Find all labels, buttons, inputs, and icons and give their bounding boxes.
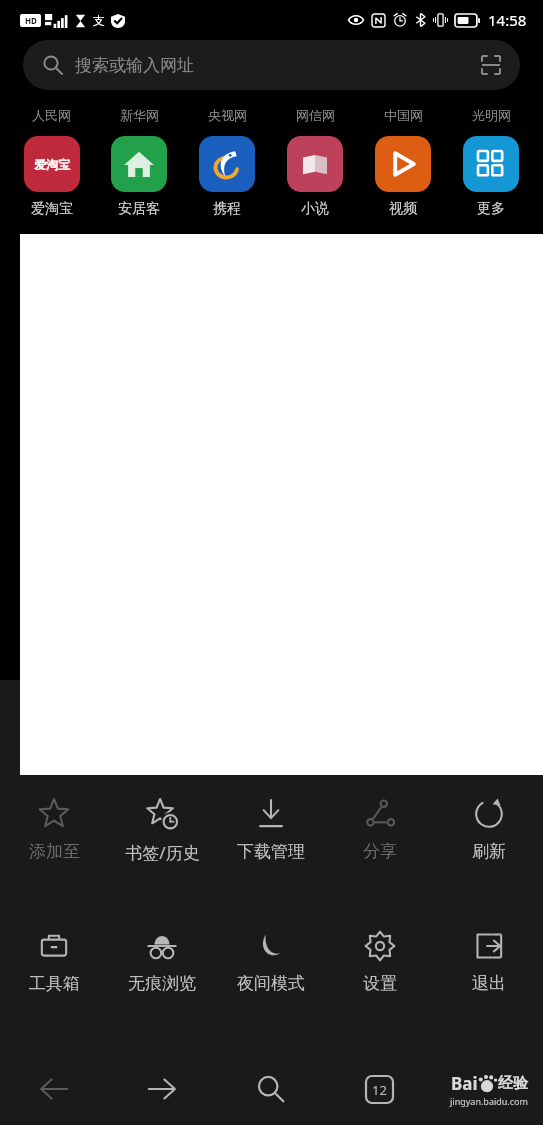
staticText: 搜索或输入网址 [75, 55, 194, 76]
button[interactable]: 安居客 [95, 136, 183, 218]
button[interactable]: 标签页 12 [325, 1053, 434, 1125]
staticText: 光明网 [472, 107, 511, 123]
button[interactable]: 添加至 [3, 791, 105, 913]
button[interactable]: 分享 [328, 791, 431, 913]
button[interactable]: 刷新 [437, 791, 540, 913]
staticText: Bai [451, 1072, 478, 1095]
button[interactable]: 光明网 [447, 107, 535, 123]
button[interactable]: 视频 [359, 136, 447, 218]
button[interactable]: 前进 [108, 1053, 216, 1125]
staticText: 分享 [363, 841, 397, 862]
button[interactable]: 更多 [447, 136, 535, 218]
staticText: 工具箱 [29, 973, 80, 994]
button[interactable]: 后退 [0, 1053, 108, 1125]
staticText: 新华网 [120, 107, 159, 123]
staticText: 经验 [498, 1074, 528, 1093]
staticText: 安居客 [118, 200, 160, 218]
button[interactable]: 央视网 [183, 107, 271, 123]
staticText: 刷新 [472, 841, 506, 862]
staticText: 退出 [472, 973, 506, 994]
staticText: 中国网 [384, 107, 423, 123]
button[interactable]: 书签/历史 [111, 791, 213, 913]
button[interactable]: 新华网 [95, 107, 183, 123]
staticText: 人民网 [32, 107, 71, 123]
button[interactable]: 搜索或输入网址 [23, 40, 520, 90]
button[interactable]: 爱淘宝 [8, 136, 95, 218]
button[interactable]: 搜索 [216, 1053, 325, 1125]
staticText: 设置 [363, 973, 397, 994]
button[interactable]: 人民网 [8, 107, 95, 123]
staticText: 更多 [477, 200, 505, 218]
button[interactable]: 网信网 [271, 107, 359, 123]
button[interactable]: 扫一扫 [468, 42, 514, 88]
button[interactable]: 下载管理 [219, 791, 322, 913]
button[interactable]: 夜间模式 [219, 923, 322, 1045]
button[interactable]: 中国网 [359, 107, 447, 123]
button[interactable]: 退出 [437, 923, 540, 1045]
button[interactable]: 小说 [271, 136, 359, 218]
staticText: 爱淘宝 [34, 157, 70, 172]
staticText: 下载管理 [237, 841, 305, 862]
staticText: 夜间模式 [237, 973, 305, 994]
staticText: 14:58 [488, 10, 527, 30]
staticText: jingyan.baidu.com [450, 1095, 528, 1107]
staticText: 央视网 [208, 107, 247, 123]
staticText: 支 [93, 13, 105, 28]
staticText: 无痕浏览 [128, 973, 196, 994]
staticText: 携程 [213, 200, 241, 218]
staticText: HD [25, 15, 37, 26]
staticText: 爱淘宝 [31, 200, 73, 218]
staticText: 视频 [389, 200, 417, 218]
button[interactable]: 工具箱 [3, 923, 105, 1045]
button[interactable]: 设置 [328, 923, 431, 1045]
button[interactable]: 无痕浏览 [111, 923, 213, 1045]
staticText: 12 [372, 1081, 387, 1099]
button[interactable]: 携程 [183, 136, 271, 218]
staticText: 网信网 [296, 107, 335, 123]
button[interactable]: 菜单 [434, 1053, 543, 1125]
staticText: 小说 [301, 200, 329, 218]
staticText: 书签/历史 [125, 841, 200, 864]
staticText: 添加至 [29, 841, 80, 862]
